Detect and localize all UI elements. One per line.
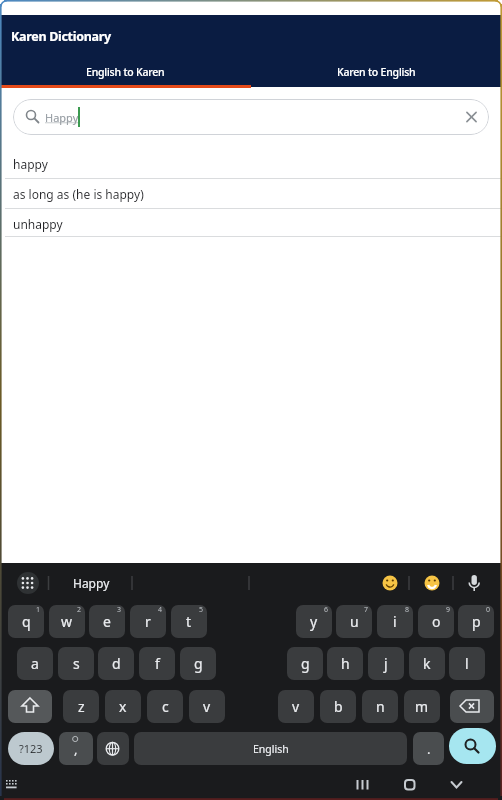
staticText: 6: [324, 605, 329, 615]
button[interactable]: Happy: [66, 571, 116, 595]
staticText: unhappy: [13, 216, 63, 232]
staticText: e: [103, 612, 111, 631]
button[interactable]: unhappy: [13, 209, 313, 238]
button[interactable]: v: [278, 690, 314, 723]
staticText: k: [423, 654, 431, 673]
staticText: Karen to English: [337, 65, 416, 79]
staticText: c: [162, 697, 169, 716]
button[interactable]: t: [171, 605, 207, 638]
staticText: g: [301, 654, 310, 673]
staticText: y: [310, 612, 318, 631]
staticText: 3: [117, 605, 122, 615]
button[interactable]: x: [105, 690, 141, 723]
staticText: p: [472, 612, 481, 631]
button[interactable]: w: [49, 605, 85, 638]
staticText: v: [292, 697, 300, 716]
button[interactable]: s: [58, 647, 94, 680]
button[interactable]: e: [89, 605, 125, 638]
button[interactable]: m: [404, 690, 440, 723]
button[interactable]: p: [458, 605, 494, 638]
button[interactable]: j: [368, 647, 404, 680]
staticText: m: [415, 697, 429, 716]
button[interactable]: r: [130, 605, 166, 638]
button[interactable]: k: [409, 647, 445, 680]
staticText: q: [22, 612, 31, 631]
staticText: b: [334, 697, 343, 716]
button[interactable]: y: [296, 605, 332, 638]
staticText: x: [119, 697, 127, 716]
button[interactable]: q: [8, 605, 44, 638]
staticText: a: [31, 654, 39, 673]
staticText: ,: [74, 740, 78, 758]
staticText: 4: [158, 605, 163, 615]
staticText: as long as (he is happy): [13, 186, 144, 202]
staticText: w: [61, 612, 73, 631]
button[interactable]: as long as (he is happy): [13, 179, 313, 208]
button[interactable]: ,: [59, 732, 93, 765]
staticText: 9: [446, 605, 451, 615]
button[interactable]: d: [98, 647, 134, 680]
button[interactable]: English to Karen: [0, 58, 251, 85]
staticText: h: [341, 654, 350, 673]
staticText: u: [350, 612, 359, 631]
staticText: j: [384, 654, 388, 673]
staticText: v: [203, 697, 211, 716]
button[interactable]: [8, 732, 54, 765]
staticText: Karen Dictionary: [11, 28, 111, 45]
staticText: happy: [13, 156, 48, 172]
button[interactable]: b: [320, 690, 356, 723]
staticText: r: [145, 612, 151, 631]
button[interactable]: z: [63, 690, 99, 723]
button[interactable]: Karen to English: [251, 58, 502, 85]
staticText: 7: [364, 605, 369, 615]
staticText: 1: [36, 605, 41, 615]
staticText: 8: [405, 605, 410, 615]
staticText: English to Karen: [86, 65, 165, 79]
button[interactable]: u: [336, 605, 372, 638]
button[interactable]: l: [449, 647, 485, 680]
staticText: ?123: [19, 741, 43, 756]
button[interactable]: [17, 572, 39, 594]
button[interactable]: [13, 99, 489, 135]
staticText: Happy: [45, 110, 79, 125]
staticText: o: [432, 612, 441, 631]
staticText: f: [155, 654, 160, 673]
staticText: l: [465, 654, 469, 673]
staticText: d: [112, 654, 121, 673]
staticText: .: [427, 740, 431, 758]
button[interactable]: [134, 732, 407, 765]
button[interactable]: h: [327, 647, 363, 680]
staticText: 5: [199, 605, 204, 615]
staticText: z: [78, 697, 85, 716]
staticText: g: [194, 654, 203, 673]
button[interactable]: [449, 728, 496, 764]
button[interactable]: a: [17, 647, 53, 680]
button[interactable]: n: [362, 690, 398, 723]
button[interactable]: .: [413, 732, 444, 765]
staticText: s: [73, 654, 80, 673]
staticText: 2: [77, 605, 82, 615]
staticText: Happy: [73, 575, 110, 591]
button[interactable]: i: [377, 605, 413, 638]
button[interactable]: g: [180, 647, 216, 680]
button[interactable]: f: [139, 647, 175, 680]
button[interactable]: g: [287, 647, 323, 680]
staticText: t: [186, 612, 192, 631]
staticText: n: [376, 697, 385, 716]
staticText: 0: [486, 605, 491, 615]
button[interactable]: c: [147, 690, 183, 723]
staticText: i: [393, 612, 397, 631]
button[interactable]: o: [418, 605, 454, 638]
button[interactable]: [450, 690, 494, 723]
staticText: English: [253, 742, 289, 756]
button[interactable]: [97, 732, 129, 765]
button[interactable]: [8, 690, 52, 723]
button[interactable]: v: [189, 690, 225, 723]
button[interactable]: happy: [13, 149, 313, 178]
